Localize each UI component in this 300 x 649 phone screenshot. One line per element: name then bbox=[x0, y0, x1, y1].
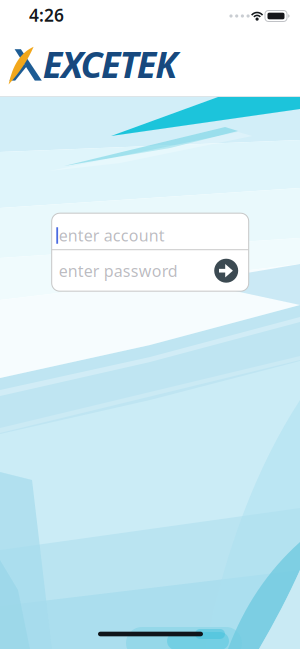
staticText bbox=[59, 260, 63, 281]
textField[interactable] bbox=[59, 225, 249, 246]
staticText bbox=[59, 225, 63, 246]
staticText: enter account bbox=[59, 225, 165, 246]
staticText: enter password bbox=[59, 260, 178, 281]
staticText: EXCETEK bbox=[43, 40, 177, 88]
textField[interactable] bbox=[59, 260, 214, 281]
staticText: 4:26 bbox=[29, 3, 64, 26]
button[interactable]: Log in bbox=[214, 259, 238, 283]
